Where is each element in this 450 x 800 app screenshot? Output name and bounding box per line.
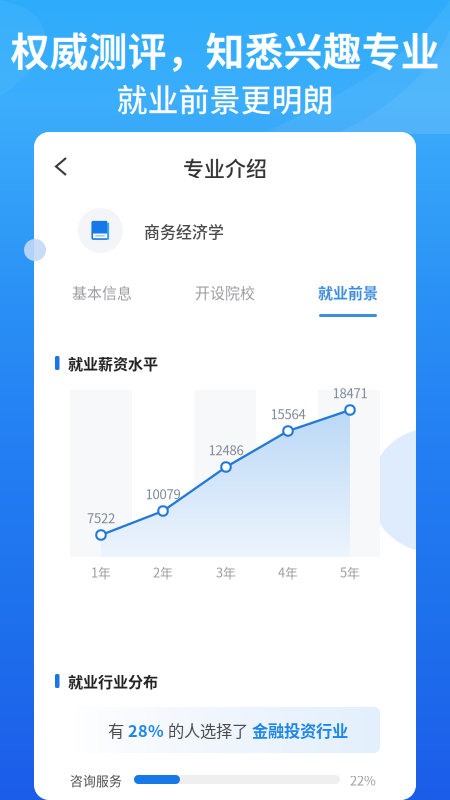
staticText: 商务经济学	[144, 219, 224, 242]
staticText: 就业薪资水平	[68, 352, 158, 374]
staticText: 开设院校	[195, 281, 255, 303]
button[interactable]: 就业前景	[298, 281, 398, 317]
button[interactable]: 返回	[40, 146, 82, 188]
staticText: 5年	[340, 563, 360, 581]
staticText: 15564	[270, 404, 305, 423]
staticText: 12486	[208, 440, 243, 459]
button[interactable]: 开设院校	[175, 281, 275, 317]
staticText: 就业前景	[318, 281, 378, 303]
staticText: 18471	[332, 383, 367, 402]
staticText: 7522	[87, 508, 115, 527]
staticText: 专业介绍	[183, 152, 267, 182]
staticText: 咨询服务	[70, 771, 122, 789]
staticText: 金融投资行业	[252, 718, 348, 742]
staticText: 的人选择了	[164, 718, 252, 742]
staticText: 3年	[216, 563, 236, 581]
staticText: 权威测评，知悉兴趣专业	[10, 21, 439, 77]
staticText: 1年	[91, 563, 111, 581]
staticText: 28%	[128, 718, 164, 742]
staticText: 就业前景更明朗	[116, 76, 333, 120]
staticText: 2年	[153, 563, 173, 581]
staticText: 就业行业分布	[68, 670, 158, 692]
button[interactable]: 基本信息	[52, 281, 152, 317]
staticText: 10079	[145, 484, 180, 503]
staticText: 有	[108, 718, 128, 742]
staticText: 22%	[350, 771, 376, 789]
staticText: 4年	[278, 563, 298, 581]
staticText: 基本信息	[72, 281, 132, 303]
